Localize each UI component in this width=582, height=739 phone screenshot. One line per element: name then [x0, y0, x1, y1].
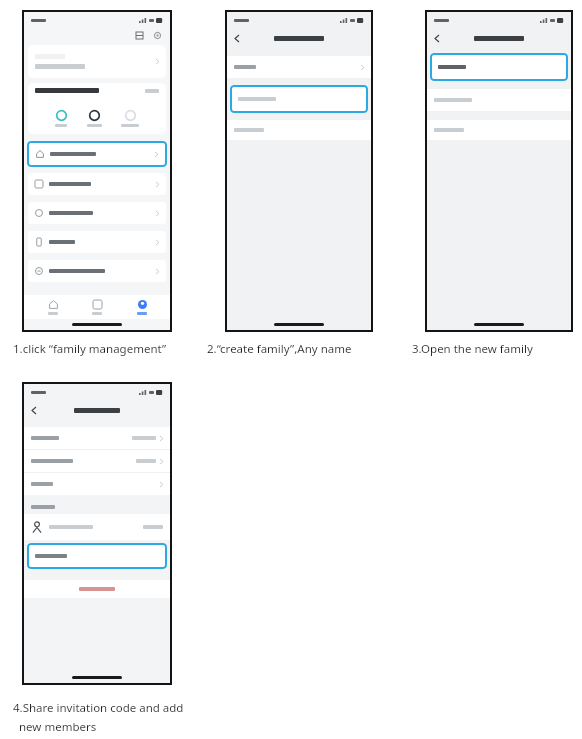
staticText: 3.Open the new family — [412, 341, 533, 357]
button[interactable] — [29, 143, 165, 165]
button[interactable]: Home — [37, 298, 69, 317]
button[interactable] — [28, 260, 166, 282]
button[interactable] — [227, 120, 371, 140]
button[interactable]: Scenes — [81, 298, 113, 317]
button[interactable] — [24, 580, 170, 598]
button[interactable] — [29, 143, 165, 165]
button[interactable]: Settings — [151, 29, 163, 41]
button[interactable] — [432, 55, 566, 79]
button[interactable] — [28, 231, 166, 253]
button[interactable]: Me — [126, 298, 158, 317]
button[interactable]: Scan — [133, 29, 145, 41]
button[interactable] — [232, 87, 366, 111]
button[interactable] — [24, 450, 170, 472]
button[interactable] — [29, 545, 165, 567]
staticText: new members — [19, 719, 97, 735]
button[interactable] — [28, 173, 166, 195]
button[interactable]: Back — [232, 34, 241, 43]
button[interactable] — [28, 45, 166, 78]
button[interactable] — [24, 427, 170, 449]
button[interactable] — [227, 56, 371, 78]
staticText: 1.click “family management” — [13, 341, 167, 357]
button[interactable] — [28, 202, 166, 224]
button[interactable]: Back — [29, 406, 38, 415]
button[interactable] — [24, 473, 170, 495]
button[interactable] — [427, 89, 571, 111]
button[interactable] — [427, 120, 571, 140]
button[interactable]: Back — [432, 34, 441, 43]
button[interactable] — [24, 514, 170, 540]
staticText: 2.“create family”,Any name — [207, 341, 352, 357]
staticText: 4.Share invitation code and add — [13, 700, 184, 716]
